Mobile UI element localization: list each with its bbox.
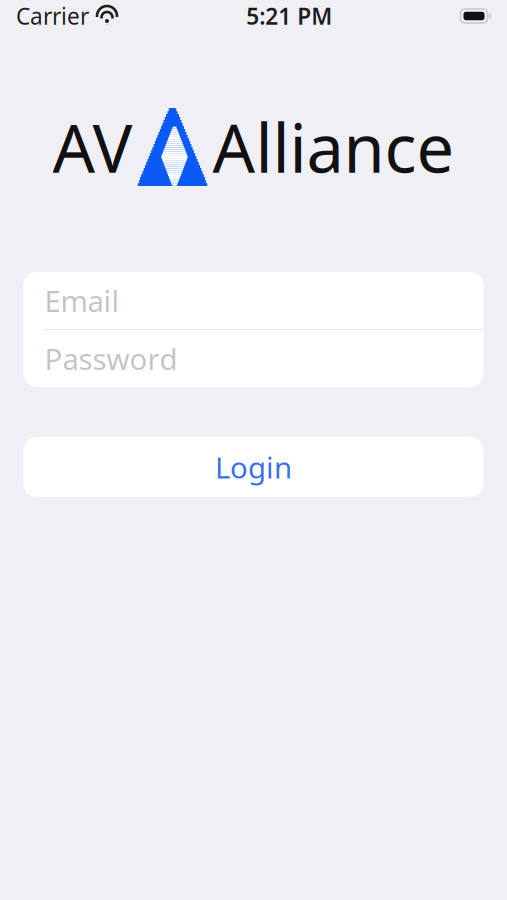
staticText: Email — [44, 281, 119, 320]
staticText: Carrier — [16, 1, 89, 31]
staticText: 5:21 PM — [246, 1, 332, 31]
button[interactable]: Login — [23, 437, 483, 497]
button[interactable]: Password — [23, 330, 483, 387]
button[interactable]: Email — [23, 272, 483, 329]
staticText: AV — [52, 103, 132, 191]
staticText: Password — [44, 339, 177, 378]
staticText: Login — [215, 447, 292, 486]
staticText: Alliance — [212, 103, 454, 191]
